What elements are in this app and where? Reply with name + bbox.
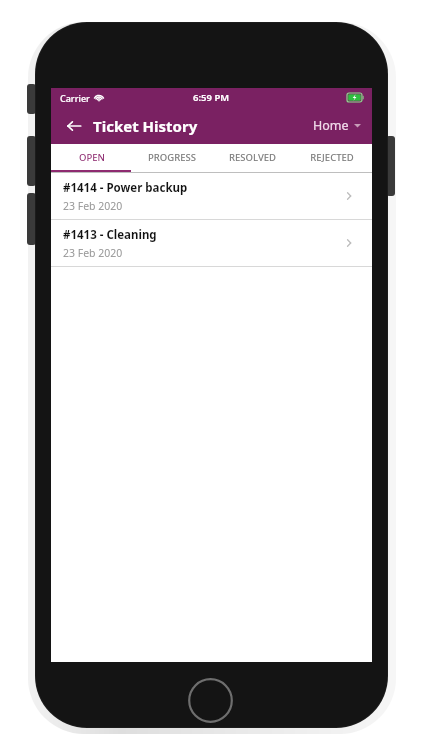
button[interactable]: REJECTED xyxy=(292,144,372,170)
button[interactable]: #1413 - Cleaning xyxy=(51,220,372,266)
staticText: OPEN xyxy=(79,151,105,164)
staticText: 23 Feb 2020 xyxy=(63,199,123,213)
staticText: Home xyxy=(313,117,349,134)
button[interactable]: PROGRESS xyxy=(132,144,212,170)
staticText: Ticket History xyxy=(93,116,198,136)
staticText: #1413 - Cleaning xyxy=(63,227,157,243)
other: Open ticket details xyxy=(338,185,360,207)
staticText: REJECTED xyxy=(310,151,354,164)
staticText: 23 Feb 2020 xyxy=(63,246,123,260)
button[interactable]: Back xyxy=(63,115,85,137)
staticText: #1414 - Power backup xyxy=(63,180,188,196)
staticText: Carrier xyxy=(60,92,90,104)
staticText: RESOLVED xyxy=(229,151,276,164)
staticText: PROGRESS xyxy=(148,151,196,164)
other: Open ticket details xyxy=(338,232,360,254)
button[interactable]: OPEN xyxy=(51,144,132,170)
button[interactable]: RESOLVED xyxy=(212,144,292,170)
button[interactable]: Home xyxy=(310,113,364,138)
button[interactable]: #1414 - Power backup xyxy=(51,173,372,219)
staticText: 6:59 PM xyxy=(193,91,230,104)
